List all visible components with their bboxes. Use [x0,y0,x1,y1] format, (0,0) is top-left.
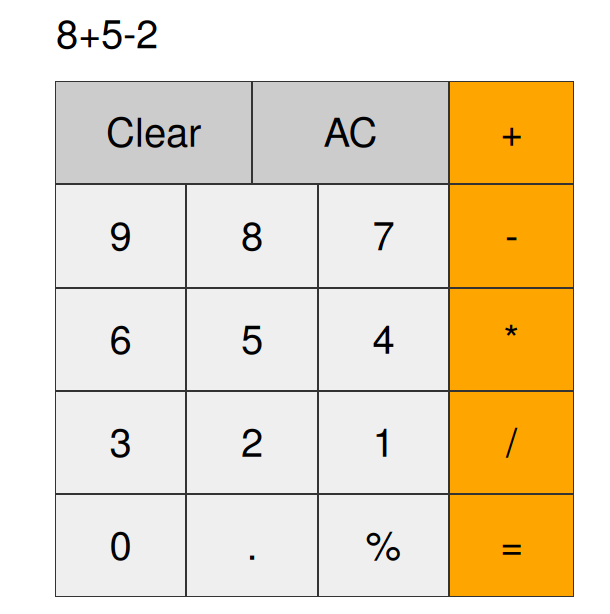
button[interactable]: 3 [55,391,186,494]
staticText: + [500,101,523,158]
button[interactable]: 0 [55,494,186,597]
staticText: 1 [372,411,394,468]
staticText: AC [323,101,377,158]
button[interactable]: 9 [55,184,186,288]
staticText: 7 [372,204,394,262]
button[interactable]: - [449,184,574,288]
staticText: 8 [241,204,263,262]
button[interactable]: 7 [318,184,449,288]
staticText: - [505,204,518,262]
staticText: 0 [109,514,131,571]
button[interactable]: Clear [55,81,252,184]
button[interactable]: * [449,288,574,391]
staticText: 3 [109,411,131,468]
button[interactable]: 6 [55,288,186,391]
button[interactable]: 1 [318,391,449,494]
staticText: * [503,308,519,365]
staticText: 6 [109,308,131,365]
staticText: Clear [106,101,201,158]
staticText: = [500,514,523,571]
button[interactable]: 4 [318,288,449,391]
button[interactable]: AC [252,81,449,184]
staticText: % [365,514,401,571]
staticText: 5 [241,308,263,365]
staticText: 2 [241,411,263,468]
button[interactable]: 2 [186,391,318,494]
button[interactable]: + [449,81,574,184]
button[interactable]: 8 [186,184,318,288]
staticText: . [246,514,257,571]
button[interactable]: . [186,494,318,597]
staticText: 4 [372,308,394,365]
button[interactable]: % [318,494,449,597]
button[interactable]: = [449,494,574,597]
staticText: 9 [109,204,131,262]
staticText: 8+5-2 [56,2,158,60]
button[interactable]: / [449,391,574,494]
button[interactable]: 5 [186,288,318,391]
staticText: / [506,411,517,468]
